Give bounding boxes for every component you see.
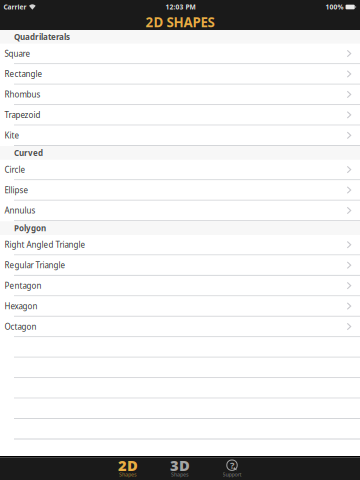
button[interactable]: 3D — [154, 458, 206, 480]
staticText: Rectangle — [5, 69, 43, 79]
staticText: Quadrilaterals — [14, 32, 70, 42]
staticText: Polygon — [14, 223, 46, 233]
staticText: Trapezoid — [5, 110, 41, 120]
staticText: Annulus — [5, 205, 36, 216]
button[interactable]: Ellipse — [0, 180, 360, 201]
staticText: Shapes — [119, 471, 137, 478]
staticText: Octagon — [5, 321, 37, 332]
staticText: Rhombus — [5, 89, 41, 100]
button[interactable]: 2D — [102, 458, 154, 480]
button[interactable]: Trapezoid — [0, 105, 360, 126]
staticText: 12:03 PM — [165, 3, 195, 11]
button[interactable]: Rectangle — [0, 64, 360, 85]
button[interactable]: Rhombus — [0, 85, 360, 105]
staticText: 2D — [118, 455, 138, 475]
staticText: Right Angled Triangle — [5, 239, 86, 250]
staticText: Support — [222, 471, 241, 478]
button[interactable]: Circle — [0, 160, 360, 180]
button[interactable]: Octagon — [0, 317, 360, 337]
button[interactable]: Right Angled Triangle — [0, 235, 360, 255]
button[interactable]: Pentagon — [0, 276, 360, 296]
staticText: 2D SHAPES — [145, 13, 214, 31]
button[interactable]: Annulus — [0, 201, 360, 221]
button[interactable]: Kite — [0, 126, 360, 146]
staticText: 3D — [170, 455, 190, 475]
staticText: Curved — [14, 148, 43, 158]
staticText: Regular Triangle — [5, 260, 66, 270]
staticText: Circle — [5, 164, 26, 175]
staticText: Shapes — [171, 471, 189, 478]
staticText: Carrier — [3, 3, 26, 11]
staticText: 100% — [325, 3, 343, 11]
button[interactable]: Square — [0, 44, 360, 64]
staticText: Kite — [5, 130, 20, 141]
staticText: Square — [5, 48, 31, 59]
button[interactable]: Regular Triangle — [0, 255, 360, 276]
staticText: Hexagon — [5, 301, 38, 311]
staticText: Pentagon — [5, 280, 42, 291]
button[interactable]: Hexagon — [0, 296, 360, 317]
button[interactable]: Support — [206, 458, 258, 480]
staticText: Ellipse — [5, 185, 29, 195]
staticText: ? — [230, 459, 234, 471]
